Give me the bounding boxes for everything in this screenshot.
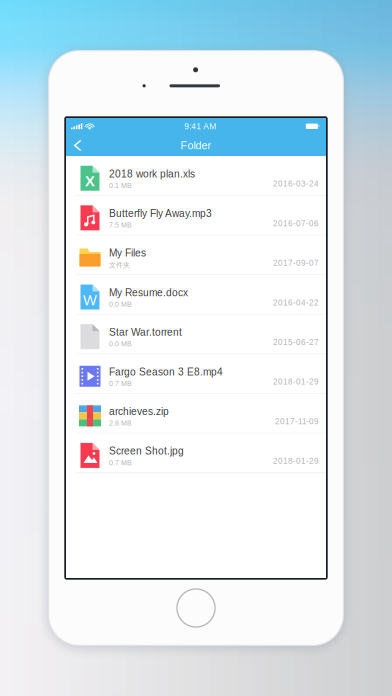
staticText: 2018-01-29 [273,377,319,386]
staticText: 0.1 MB [109,182,132,189]
staticText: 文件夹 [109,261,130,270]
staticText: 9:41 AM [184,122,216,131]
staticText: Butterfly Fly Away.mp3 [109,208,212,219]
staticText: 0.7 MB [109,380,132,387]
button[interactable]: archieves.zip [66,394,326,433]
staticText: 2016-03-24 [273,179,319,188]
staticText: 7.5 MB [109,221,132,229]
staticText: 0.7 MB [109,459,132,467]
staticText: My Resume.docx [109,287,188,298]
staticText: 2016-07-06 [273,219,319,228]
button[interactable]: Fargo Season 3 E8.mp4 [66,354,326,394]
staticText: 2017-11-09 [275,417,319,426]
button[interactable]: My Files [66,235,326,275]
button[interactable]: Star War.torrent [66,315,326,354]
button[interactable]: W [66,275,326,315]
staticText: 2018-01-29 [273,456,319,465]
staticText: X [85,173,95,189]
staticText: 2017-09-07 [273,258,319,268]
staticText: Screen Shot.jpg [109,445,184,457]
staticText: Folder [180,139,211,151]
staticText: Star War.torrent [109,327,182,338]
staticText: W [83,292,97,308]
button[interactable]: Back [68,135,87,156]
staticText: 0.0 MB [109,300,132,308]
staticText: 2018 work plan.xls [109,168,195,180]
staticText: My Files [109,247,146,259]
staticText: archieves.zip [109,406,169,417]
button[interactable]: Butterfly Fly Away.mp3 [66,196,326,235]
button[interactable]: Screen Shot.jpg [66,433,326,473]
staticText: 2.8 MB [109,419,132,427]
staticText: 0.0 MB [109,340,132,348]
button[interactable]: X [66,156,326,196]
staticText: 2015-06-27 [273,338,319,347]
staticText: Fargo Season 3 E8.mp4 [109,366,223,378]
staticText: 2016-04-22 [273,298,319,307]
